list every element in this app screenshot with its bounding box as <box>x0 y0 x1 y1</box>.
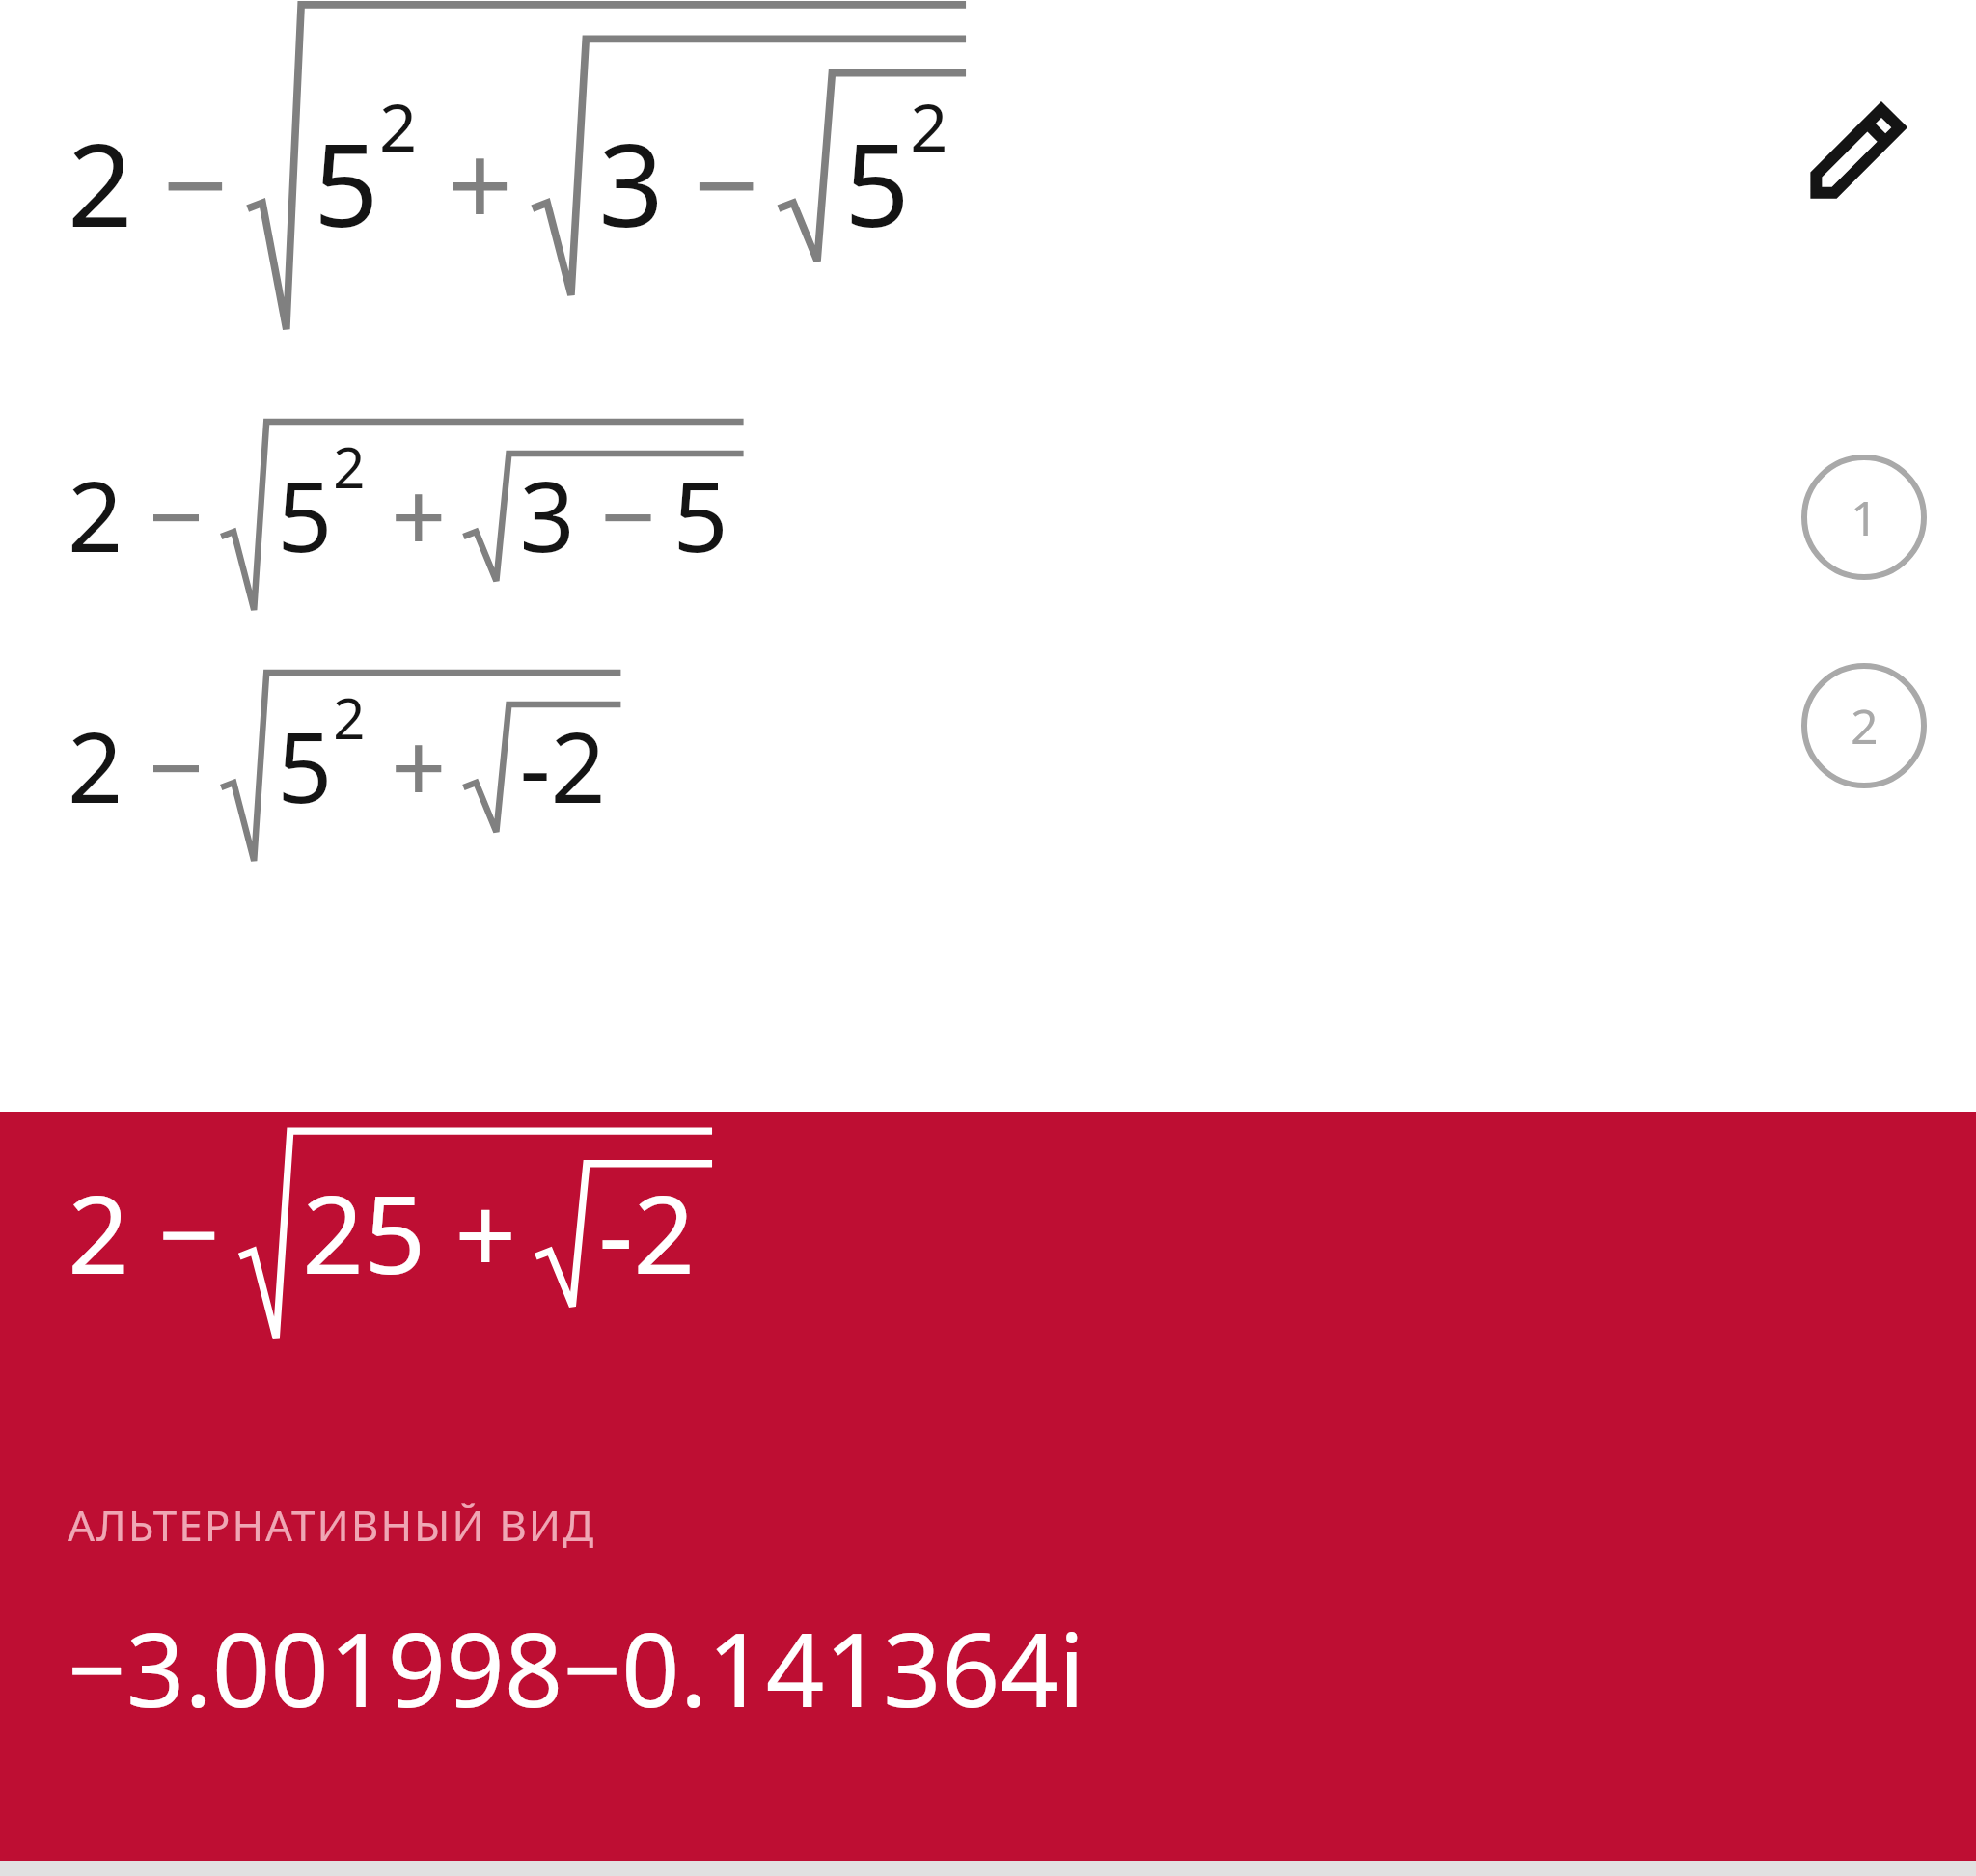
button[interactable]: АЛЬТЕРНАТИВНЫЙ ВИД <box>0 1112 1976 1861</box>
staticText: АЛЬТЕРНАТИВНЫЙ ВИД <box>68 1496 596 1554</box>
staticText: −3.001998−0.141364i <box>68 1598 1085 1737</box>
button[interactable]: Edit expression <box>0 0 1976 386</box>
button[interactable]: 2 <box>0 648 1976 928</box>
button[interactable]: 2 <box>1800 662 1928 789</box>
button[interactable]: Edit expression <box>1795 87 1920 212</box>
button[interactable]: 1 <box>1800 454 1928 581</box>
staticText: 2 <box>1851 693 1879 759</box>
button[interactable]: 1 <box>0 386 1976 648</box>
staticText: 1 <box>1851 484 1879 550</box>
